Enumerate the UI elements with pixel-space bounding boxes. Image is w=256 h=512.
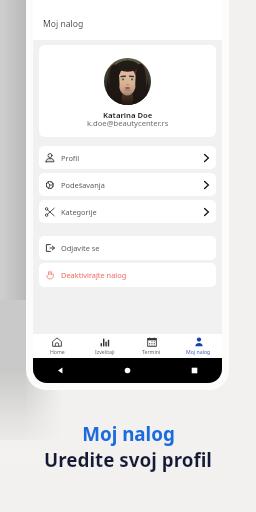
staticText: Moj nalog xyxy=(82,421,175,447)
staticText: k.doe@beautycenter.rs xyxy=(87,118,169,128)
staticText: Profil xyxy=(61,153,80,163)
staticText: Moj nalog xyxy=(43,18,84,30)
button[interactable]: Moj nalog xyxy=(175,337,222,355)
staticText: Deaktivirajte nalog xyxy=(61,270,127,280)
staticText: Termini xyxy=(142,348,161,355)
button[interactable]: Podešavanja xyxy=(39,173,216,196)
staticText: Odjavite se xyxy=(61,243,100,253)
button[interactable]: Odjavite se xyxy=(39,236,216,260)
button[interactable]: Home xyxy=(33,337,81,355)
button[interactable]: Deaktivirajte nalog xyxy=(39,263,216,287)
button[interactable]: Profil xyxy=(39,146,216,169)
staticText: Kategorije xyxy=(61,207,97,217)
staticText: Moj nalog xyxy=(186,348,211,355)
staticText: Katarina Doe xyxy=(103,110,153,120)
staticText: Uredite svoj profil xyxy=(44,447,212,473)
staticText: Home xyxy=(50,348,65,355)
staticText: Podešavanja xyxy=(61,180,105,190)
staticText: Izveštaji xyxy=(95,348,115,355)
button[interactable]: Izveštaji xyxy=(81,337,128,355)
button[interactable]: Termini xyxy=(128,337,175,355)
button[interactable]: Kategorije xyxy=(39,200,216,223)
